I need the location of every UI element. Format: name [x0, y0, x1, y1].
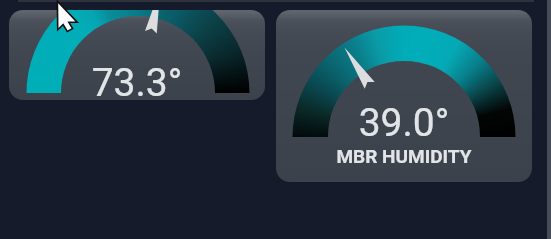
staticText: 73.3°: [9, 60, 265, 100]
button[interactable]: 39.0°: [276, 10, 532, 182]
staticText: 39.0°: [276, 100, 532, 182]
button[interactable]: Temperature 73.3 degrees: [9, 10, 265, 100]
staticText: MBR HUMIDITY: [276, 145, 532, 182]
